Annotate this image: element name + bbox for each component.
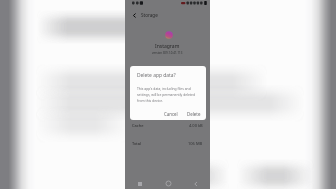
staticText: Instagram: [155, 43, 180, 50]
button[interactable]: Home: [154, 178, 182, 189]
staticText: Cache: [132, 123, 144, 128]
button[interactable]: Cache: [125, 122, 210, 129]
button[interactable]: Cancel: [163, 110, 179, 118]
staticText: This app's data, including files and set…: [137, 86, 202, 103]
button[interactable]: Delete: [186, 110, 202, 118]
staticText: 106 MB: [188, 141, 203, 146]
button[interactable]: Total: [125, 140, 210, 147]
staticText: Total: [132, 141, 142, 146]
staticText: Storage: [141, 12, 158, 18]
staticText: Cancel: [164, 111, 178, 117]
staticText: 4.00 kB: [189, 123, 203, 128]
staticText: version 309.1.0.41.113: [152, 51, 183, 55]
button[interactable]: Recents: [125, 178, 154, 189]
staticText: Delete app data?: [137, 72, 176, 79]
button[interactable]: Back: [182, 178, 210, 189]
button[interactable]: Navigate up: [129, 10, 139, 20]
staticText: Delete: [187, 111, 201, 117]
